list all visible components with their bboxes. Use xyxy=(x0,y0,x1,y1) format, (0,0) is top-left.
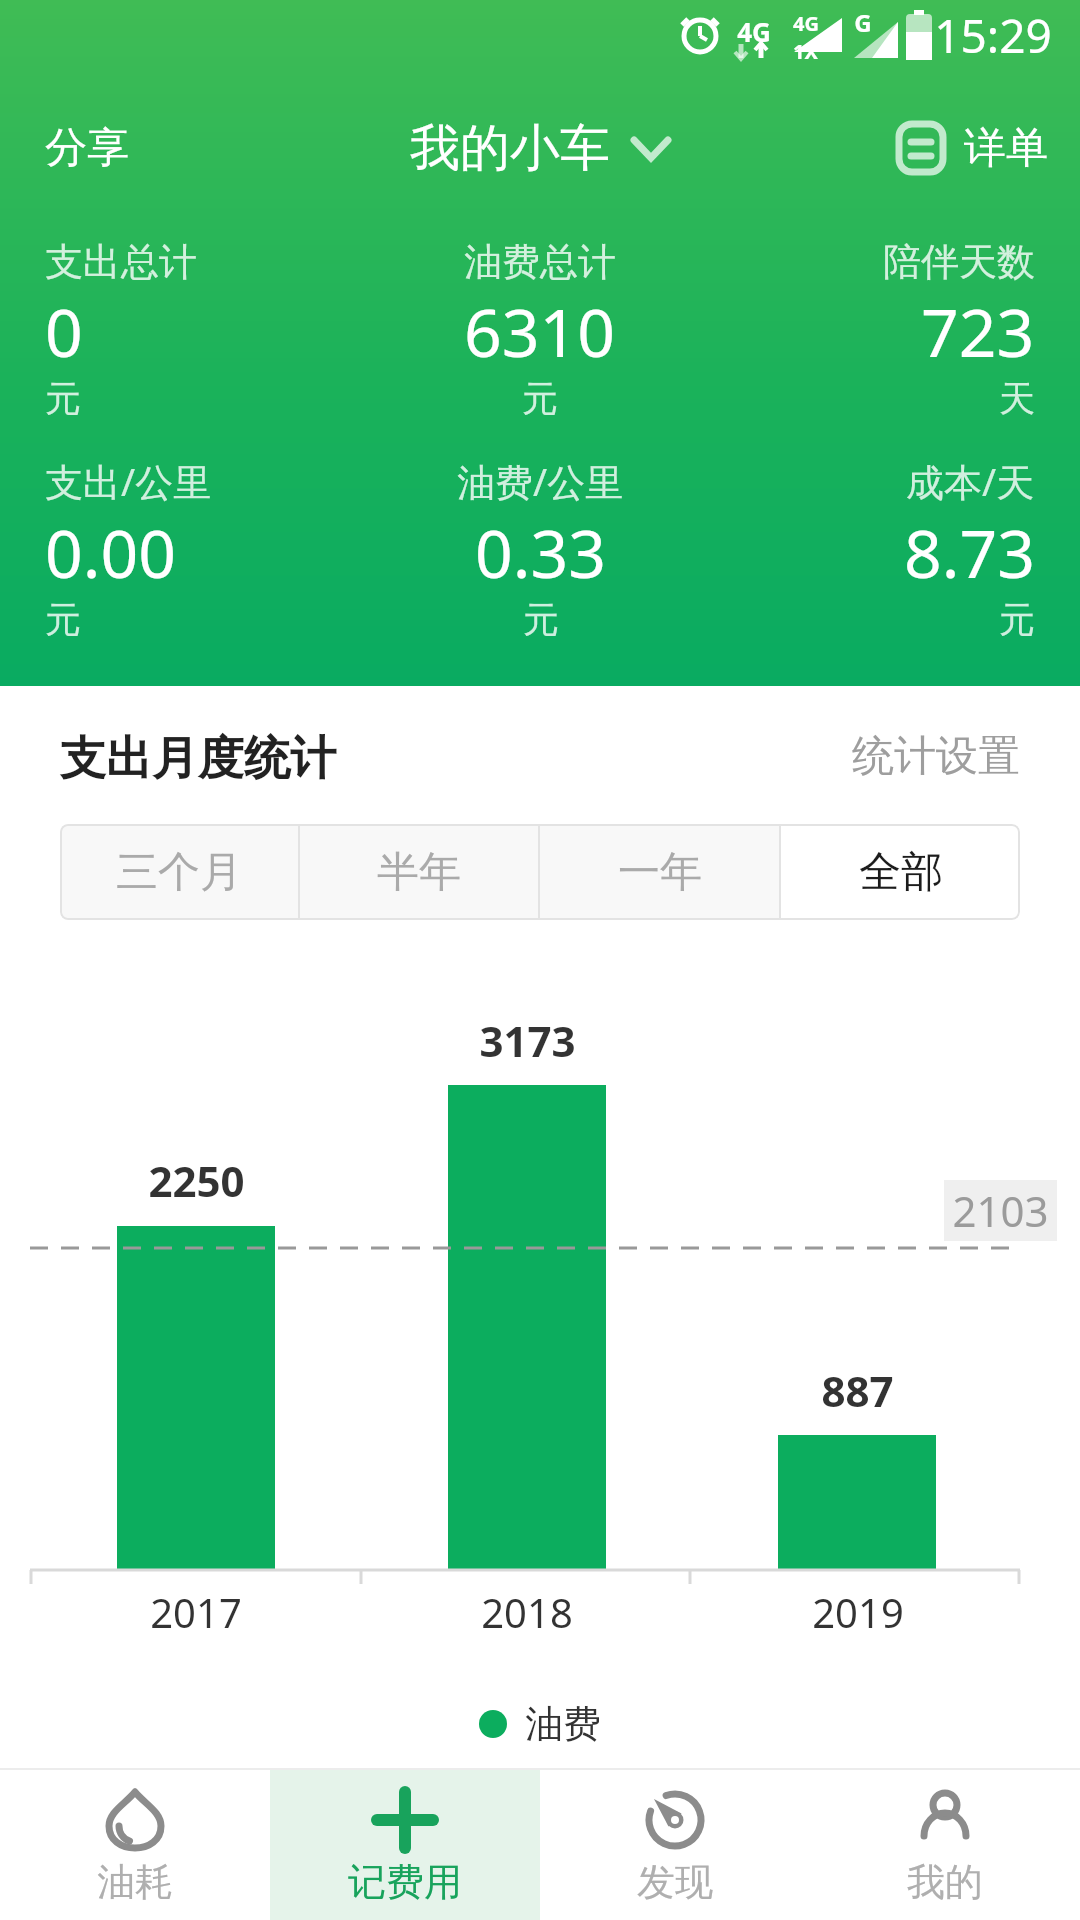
staticText: 2019 xyxy=(812,1585,904,1639)
button[interactable]: 油耗 xyxy=(0,1770,270,1920)
staticText: 发现 xyxy=(637,1858,713,1906)
staticText: 油耗 xyxy=(97,1858,173,1906)
staticText: 一年 xyxy=(618,846,702,899)
staticText: 3173 xyxy=(479,1012,576,1068)
staticText: 4G xyxy=(793,10,819,37)
staticText: 支出月度统计 xyxy=(60,730,336,788)
staticText: 支出/公里 xyxy=(45,455,212,507)
staticText: 6310 xyxy=(464,286,616,376)
staticText: 半年 xyxy=(377,846,461,899)
button[interactable]: 统计设置 xyxy=(852,730,1020,783)
staticText: 元 xyxy=(523,597,559,642)
button[interactable]: 全部 xyxy=(781,824,1020,920)
button[interactable]: 分享 xyxy=(0,114,149,183)
staticText: 0.00 xyxy=(45,507,176,597)
staticText: 4G xyxy=(737,14,771,49)
staticText: 2017 xyxy=(150,1585,242,1639)
staticText: 元 xyxy=(45,376,81,421)
staticText: 记费用 xyxy=(348,1858,462,1906)
button[interactable]: 发现 xyxy=(540,1770,810,1920)
staticText: 元 xyxy=(999,597,1035,642)
staticText: 我的 xyxy=(907,1858,983,1906)
staticText: G xyxy=(854,6,872,39)
button[interactable]: 我的 xyxy=(810,1770,1080,1920)
staticText: 三个月 xyxy=(116,846,242,899)
button[interactable]: 我的小车 xyxy=(410,117,670,180)
staticText: 0.33 xyxy=(475,507,606,597)
staticText: 统计设置 xyxy=(852,730,1020,783)
staticText: 详单 xyxy=(964,122,1048,175)
staticText: 陪伴天数 xyxy=(883,238,1035,286)
staticText: 天 xyxy=(999,376,1035,421)
staticText: 2018 xyxy=(481,1585,573,1639)
button[interactable]: 半年 xyxy=(300,824,538,920)
button[interactable]: 详单 xyxy=(896,121,1080,175)
staticText: 支出总计 xyxy=(45,238,197,286)
staticText: 油费 xyxy=(525,1700,601,1748)
staticText: 2103 xyxy=(952,1182,1049,1239)
staticText: 我的小车 xyxy=(410,117,610,180)
staticText: 723 xyxy=(921,286,1035,376)
staticText: 8.73 xyxy=(904,507,1035,597)
staticText: 1X xyxy=(793,38,818,65)
staticText: 0 xyxy=(45,286,83,376)
staticText: 油费/公里 xyxy=(457,455,624,507)
staticText: 元 xyxy=(522,376,558,421)
staticText: 887 xyxy=(821,1362,894,1418)
staticText: 15:29 xyxy=(934,4,1052,67)
staticText: 2250 xyxy=(148,1152,245,1208)
staticText: 元 xyxy=(45,597,81,642)
staticText: 油费总计 xyxy=(464,238,616,286)
button[interactable]: 记费用 xyxy=(270,1770,540,1920)
button[interactable]: 一年 xyxy=(540,824,779,920)
button[interactable]: 三个月 xyxy=(60,824,298,920)
staticText: 全部 xyxy=(859,846,943,899)
staticText: 成本/天 xyxy=(906,455,1035,507)
